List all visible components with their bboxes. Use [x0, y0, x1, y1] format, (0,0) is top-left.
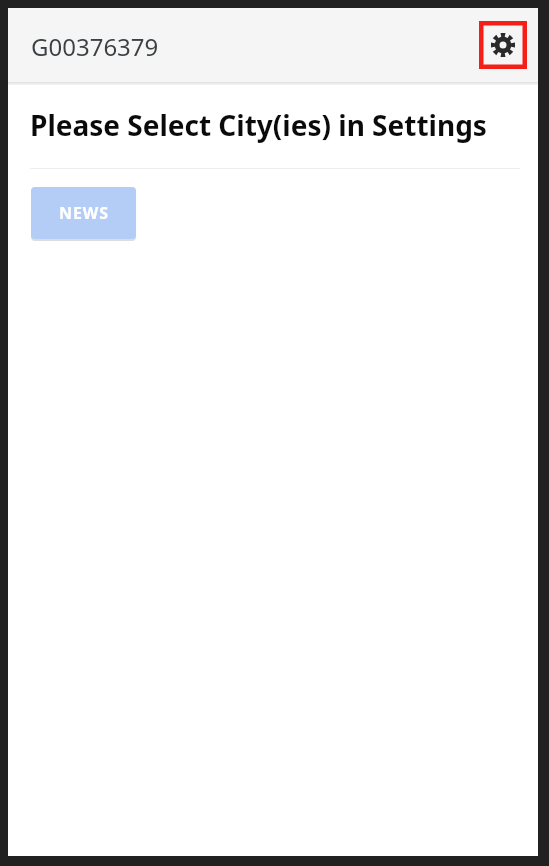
staticText: NEWS [59, 202, 109, 224]
staticText: Please Select City(ies) in Settings [30, 106, 518, 144]
staticText: G00376379 [31, 30, 159, 63]
button[interactable]: NEWS [31, 187, 136, 239]
button[interactable]: Settings [479, 21, 527, 69]
